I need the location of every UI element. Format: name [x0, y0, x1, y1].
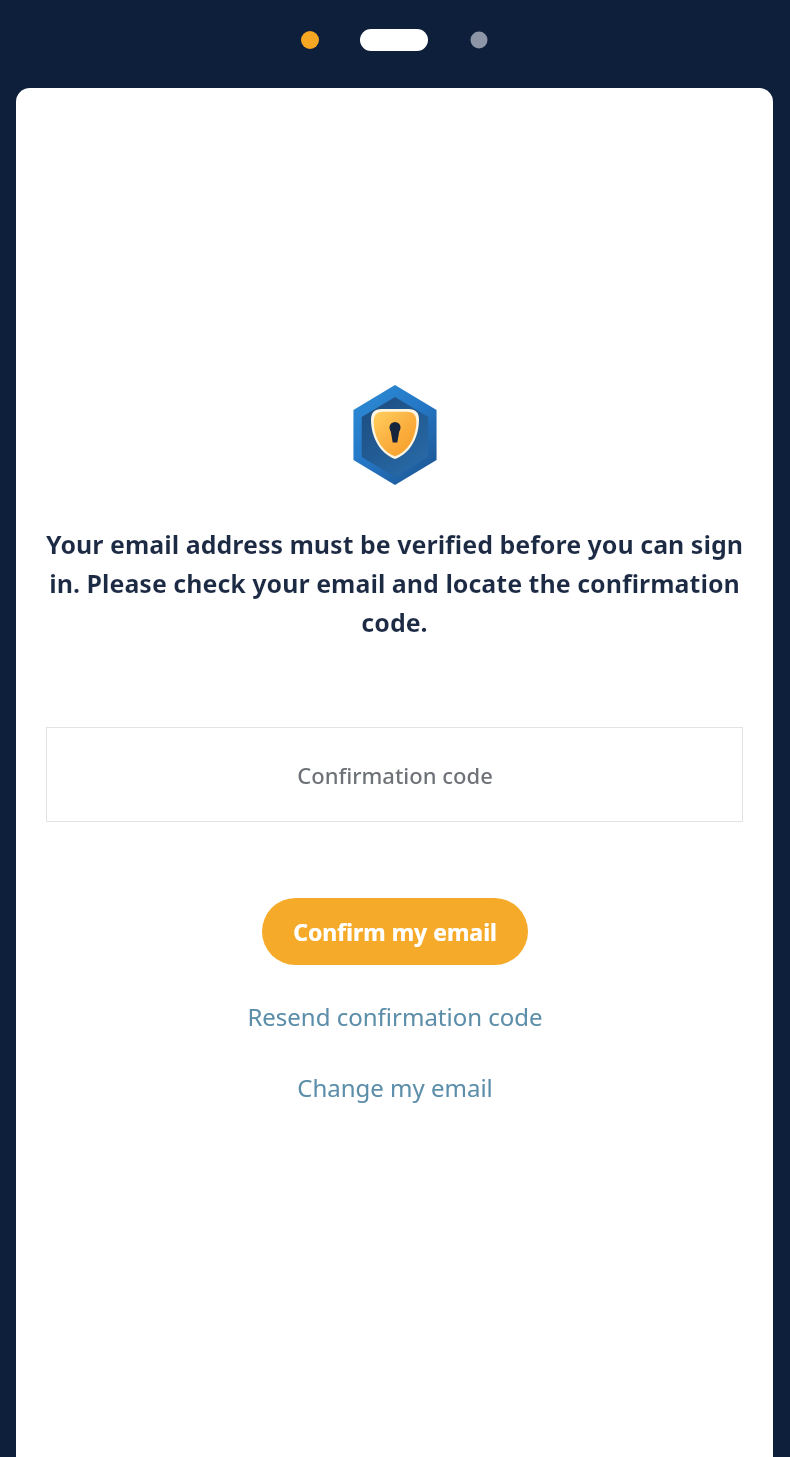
staticText: Your email address must be verified befo… [30, 527, 759, 639]
button[interactable]: Change my email [285, 1065, 505, 1110]
button[interactable]: Confirm my email [262, 898, 528, 965]
staticText: Confirmation code [297, 760, 493, 790]
staticText: Resend confirmation code [247, 1000, 543, 1033]
button[interactable]: Confirmation code [46, 727, 743, 822]
staticText: Change my email [297, 1071, 493, 1104]
button[interactable]: Resend confirmation code [235, 994, 555, 1039]
staticText: Confirm my email [293, 916, 497, 947]
